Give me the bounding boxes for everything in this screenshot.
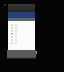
button[interactable] xyxy=(8,33,35,36)
button[interactable] xyxy=(8,24,35,27)
button[interactable] xyxy=(8,30,35,33)
button[interactable] xyxy=(8,36,35,39)
button[interactable] xyxy=(8,42,35,45)
button[interactable] xyxy=(8,27,35,30)
button[interactable] xyxy=(8,39,35,42)
